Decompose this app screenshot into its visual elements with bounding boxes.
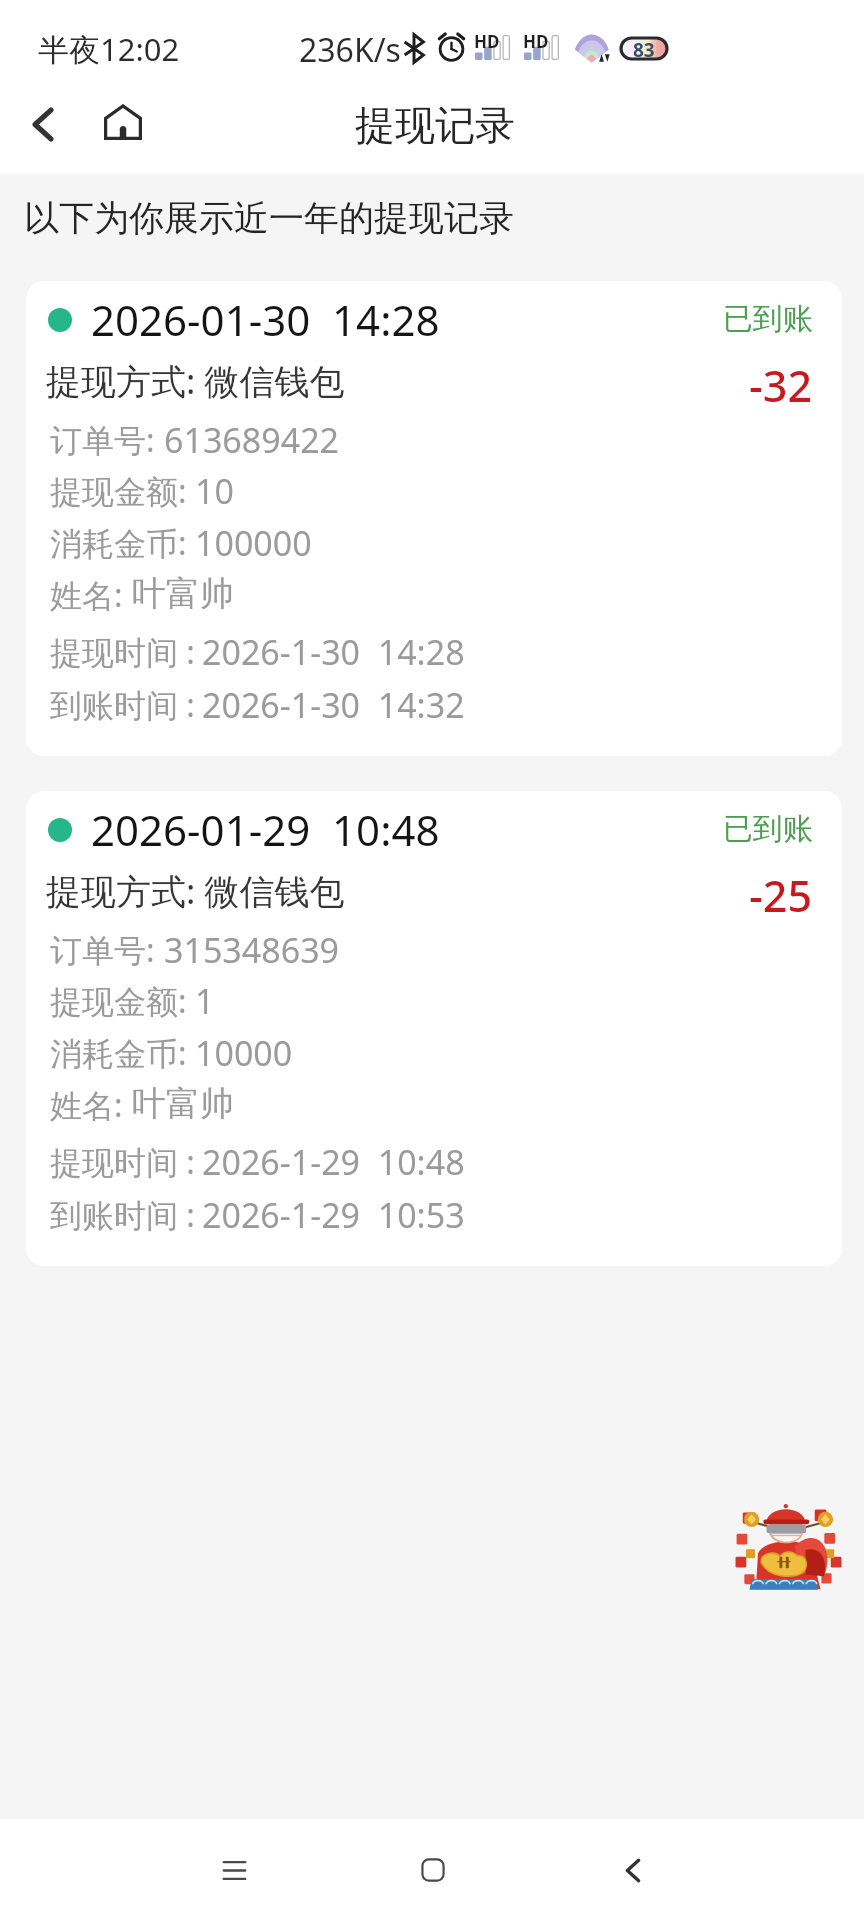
staticText: -25 <box>749 866 812 925</box>
staticText: 2026-01-29 10:48 <box>91 801 440 858</box>
staticText: 提现时间 : <box>50 630 195 674</box>
button[interactable]: 2026-01-30 14:28 <box>26 281 842 756</box>
staticText: 以下为你展示近一年的提现记录 <box>24 196 514 240</box>
staticText: 100000 <box>195 520 312 566</box>
staticText: 613689422 <box>164 417 340 463</box>
staticText: HD <box>523 30 549 53</box>
staticText: 2026-1-30 14:28 <box>202 629 465 675</box>
staticText: 半夜12:02 <box>38 28 180 70</box>
staticText: 到账时间 : <box>50 683 195 727</box>
staticText: 2026-1-29 10:48 <box>202 1139 465 1185</box>
staticText: 订单号: <box>50 418 155 462</box>
staticText: 提现方式: 微信钱包 <box>46 357 345 405</box>
staticText: 315348639 <box>164 927 340 973</box>
staticText: 提现方式: 微信钱包 <box>46 867 345 915</box>
staticText: 提现时间 : <box>50 1140 195 1184</box>
staticText: -32 <box>749 356 812 415</box>
staticText: 消耗金币: <box>50 1031 187 1075</box>
button[interactable]: Promotion <box>735 1504 842 1592</box>
staticText: 2026-1-29 10:53 <box>202 1192 465 1238</box>
staticText: 2026-1-30 14:32 <box>202 682 465 728</box>
staticText: 姓名: <box>50 1083 123 1127</box>
button[interactable]: Back <box>13 94 73 154</box>
staticText: 10 <box>195 468 234 514</box>
staticText: 1 <box>195 978 215 1024</box>
button[interactable]: Home <box>93 92 153 152</box>
staticText: 提现记录 <box>355 100 515 150</box>
staticText: 已到账 <box>723 300 813 338</box>
staticText: 叶富帅 <box>132 1082 234 1125</box>
staticText: 订单号: <box>50 928 155 972</box>
staticText: 提现金额: <box>50 469 187 513</box>
button[interactable]: 2026-01-29 10:48 <box>26 791 842 1266</box>
staticText: 83 <box>633 38 655 58</box>
staticText: 姓名: <box>50 573 123 617</box>
staticText: 已到账 <box>723 810 813 848</box>
staticText: 10000 <box>195 1030 293 1076</box>
staticText: 2026-01-30 14:28 <box>91 291 440 348</box>
button[interactable]: Recents <box>196 1832 272 1908</box>
staticText: 叶富帅 <box>132 572 234 615</box>
staticText: 到账时间 : <box>50 1193 195 1237</box>
staticText: 消耗金币: <box>50 521 187 565</box>
button[interactable]: Back <box>595 1832 671 1908</box>
button[interactable]: Home <box>395 1832 471 1908</box>
staticText: 236K/s <box>299 28 401 72</box>
staticText: HD <box>474 30 500 53</box>
staticText: 提现金额: <box>50 979 187 1023</box>
